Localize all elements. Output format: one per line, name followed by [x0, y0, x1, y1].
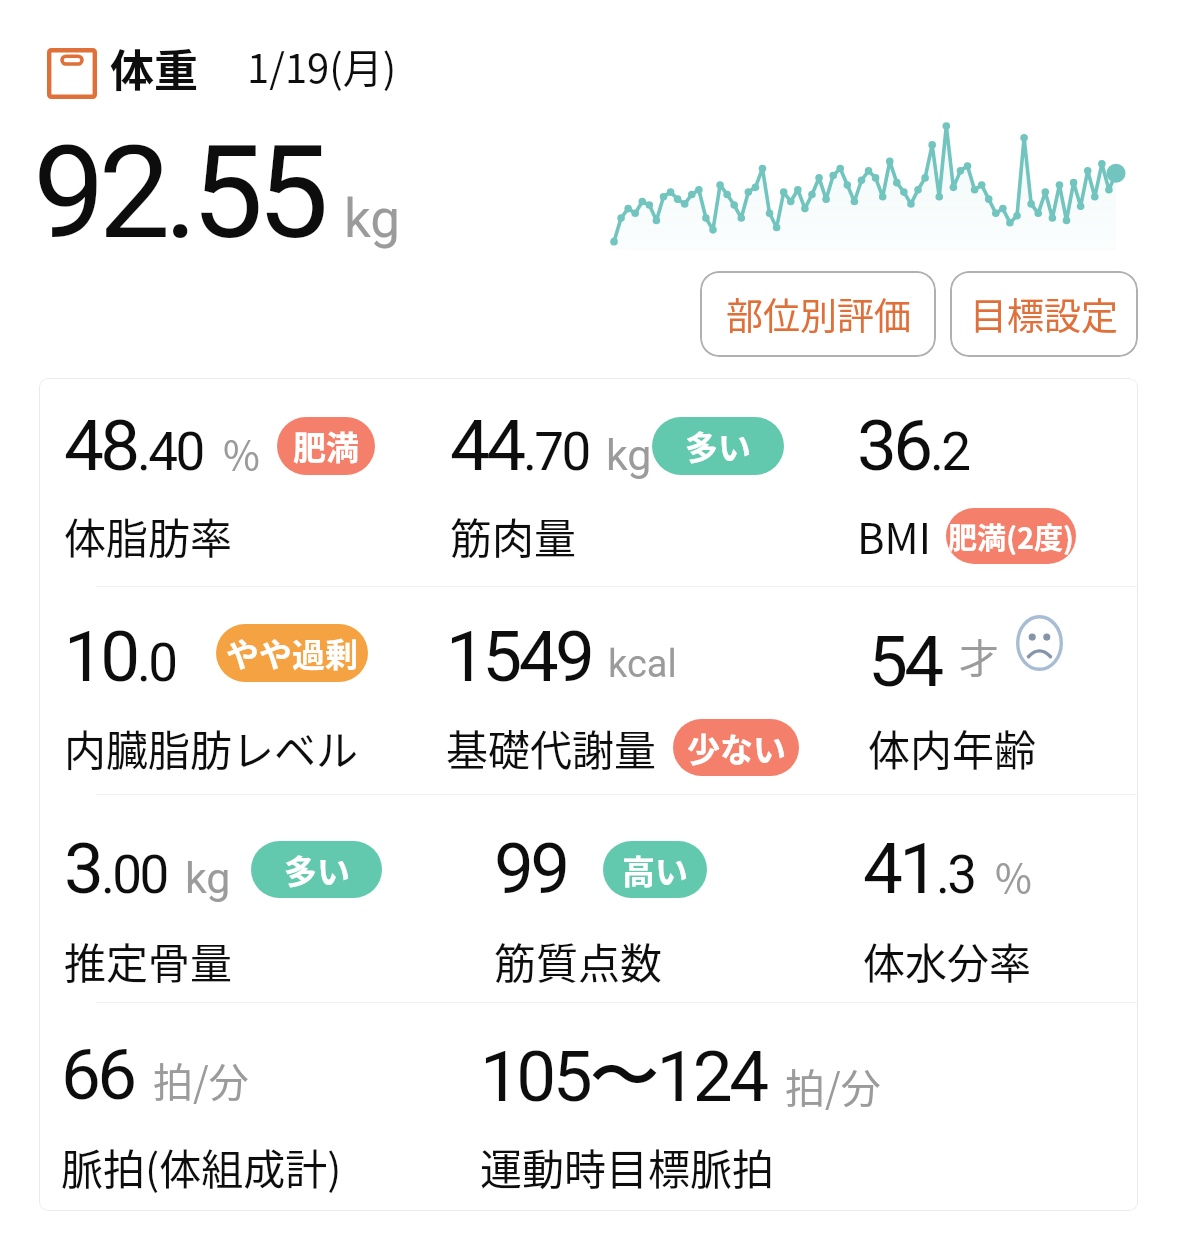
button[interactable]: やや過剰 [216, 624, 368, 682]
staticText: .3 [936, 844, 975, 906]
staticText: 肥満(2度) [948, 515, 1075, 557]
staticText: 92.55 [33, 118, 323, 268]
staticText: kg [344, 188, 401, 250]
staticText: 筋肉量 [450, 505, 577, 566]
staticText: 少ない [687, 724, 786, 772]
staticText: kg [606, 430, 652, 480]
staticText: .70 [523, 421, 589, 483]
staticText: % [223, 424, 260, 482]
staticText: 体重 [110, 36, 198, 100]
staticText: 多い [685, 422, 751, 470]
staticText: 部位別評価 [726, 287, 911, 341]
staticText: 41 [863, 827, 936, 910]
button[interactable]: 高い [603, 841, 707, 898]
staticText: やや過剰 [226, 629, 358, 677]
button[interactable]: 多い [251, 841, 382, 898]
staticText: 多い [284, 846, 350, 894]
button[interactable]: 多い [652, 417, 784, 475]
staticText: 66 [61, 1033, 134, 1116]
staticText: 3 [64, 827, 101, 910]
staticText: 運動時目標脈拍 [480, 1136, 775, 1197]
staticText: .2 [930, 421, 969, 483]
other: Weight scale [47, 48, 97, 99]
button[interactable]: 部位別評価 [700, 271, 936, 357]
staticText: 44 [450, 404, 523, 487]
staticText: 1549 [446, 615, 592, 698]
staticText: 肥満 [293, 422, 359, 470]
button[interactable]: 肥満 [277, 417, 375, 475]
staticText: BMI [857, 505, 932, 566]
staticText: 高い [622, 846, 688, 894]
staticText: 体水分率 [863, 930, 1032, 991]
staticText: 54 [868, 620, 941, 703]
button[interactable]: 少ない [673, 719, 799, 776]
staticText: 10 [64, 615, 137, 698]
staticText: 筋質点数 [494, 930, 663, 991]
staticText: 拍/分 [153, 1051, 249, 1109]
staticText: 脈拍(体組成計) [61, 1136, 342, 1197]
staticText: 才 [959, 627, 999, 685]
staticText: .40 [137, 421, 203, 483]
staticText: 推定骨量 [64, 930, 233, 991]
staticText: 36 [857, 404, 930, 487]
staticText: 99 [494, 827, 567, 910]
button[interactable]: 目標設定 [950, 271, 1138, 357]
staticText: .00 [101, 844, 167, 906]
staticText: 基礎代謝量 [446, 717, 657, 778]
staticText: kg [185, 853, 231, 903]
button[interactable]: 肥満(2度) [946, 508, 1076, 564]
staticText: 拍/分 [785, 1057, 881, 1115]
staticText: 内臓脂肪レベル [64, 717, 359, 778]
staticText: 1/19(月) [247, 37, 397, 95]
staticText: 体脂肪率 [64, 505, 233, 566]
staticText: 105〜124 [480, 1033, 766, 1122]
staticText: kcal [608, 642, 677, 687]
staticText: % [995, 847, 1032, 905]
staticText: 体内年齢 [868, 717, 1037, 778]
staticText: .0 [137, 632, 176, 694]
staticText: 48 [64, 404, 137, 487]
staticText: 目標設定 [970, 287, 1118, 341]
